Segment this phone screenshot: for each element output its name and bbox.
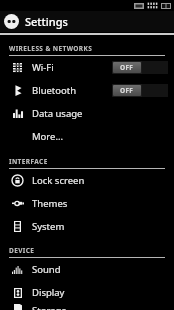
- button[interactable]: Lock screen: [0, 169, 174, 192]
- staticText: OFF: [120, 63, 134, 72]
- button[interactable]: Storage: [0, 304, 174, 310]
- button[interactable]: Wi-Fi: [0, 56, 174, 79]
- button[interactable]: Settings: [0, 11, 174, 32]
- button[interactable]: Toggle off: [112, 61, 168, 74]
- button[interactable]: Toggle off: [112, 84, 168, 97]
- button[interactable]: Bluetooth: [0, 79, 174, 102]
- staticText: Lock screen: [32, 174, 85, 187]
- staticText: Themes: [32, 197, 68, 210]
- staticText: Data usage: [32, 107, 83, 120]
- staticText: Wi-Fi: [32, 61, 54, 74]
- button[interactable]: Sound: [0, 258, 174, 281]
- staticText: WIRELESS & NETWORKS: [9, 44, 93, 53]
- staticText: More...: [32, 130, 64, 143]
- staticText: Settings: [25, 14, 68, 29]
- button[interactable]: Data usage: [0, 102, 174, 125]
- staticText: System: [32, 220, 65, 233]
- staticText: Bluetooth: [32, 84, 77, 97]
- button[interactable]: Themes: [0, 192, 174, 215]
- staticText: INTERFACE: [9, 157, 48, 166]
- button[interactable]: More...: [0, 125, 174, 148]
- staticText: Display: [32, 286, 65, 299]
- staticText: DEVICE: [9, 246, 35, 255]
- staticText: Storage: [32, 304, 67, 310]
- button[interactable]: Display: [0, 281, 174, 304]
- staticText: Sound: [32, 263, 61, 276]
- staticText: OFF: [120, 86, 134, 95]
- button[interactable]: System: [0, 215, 174, 238]
